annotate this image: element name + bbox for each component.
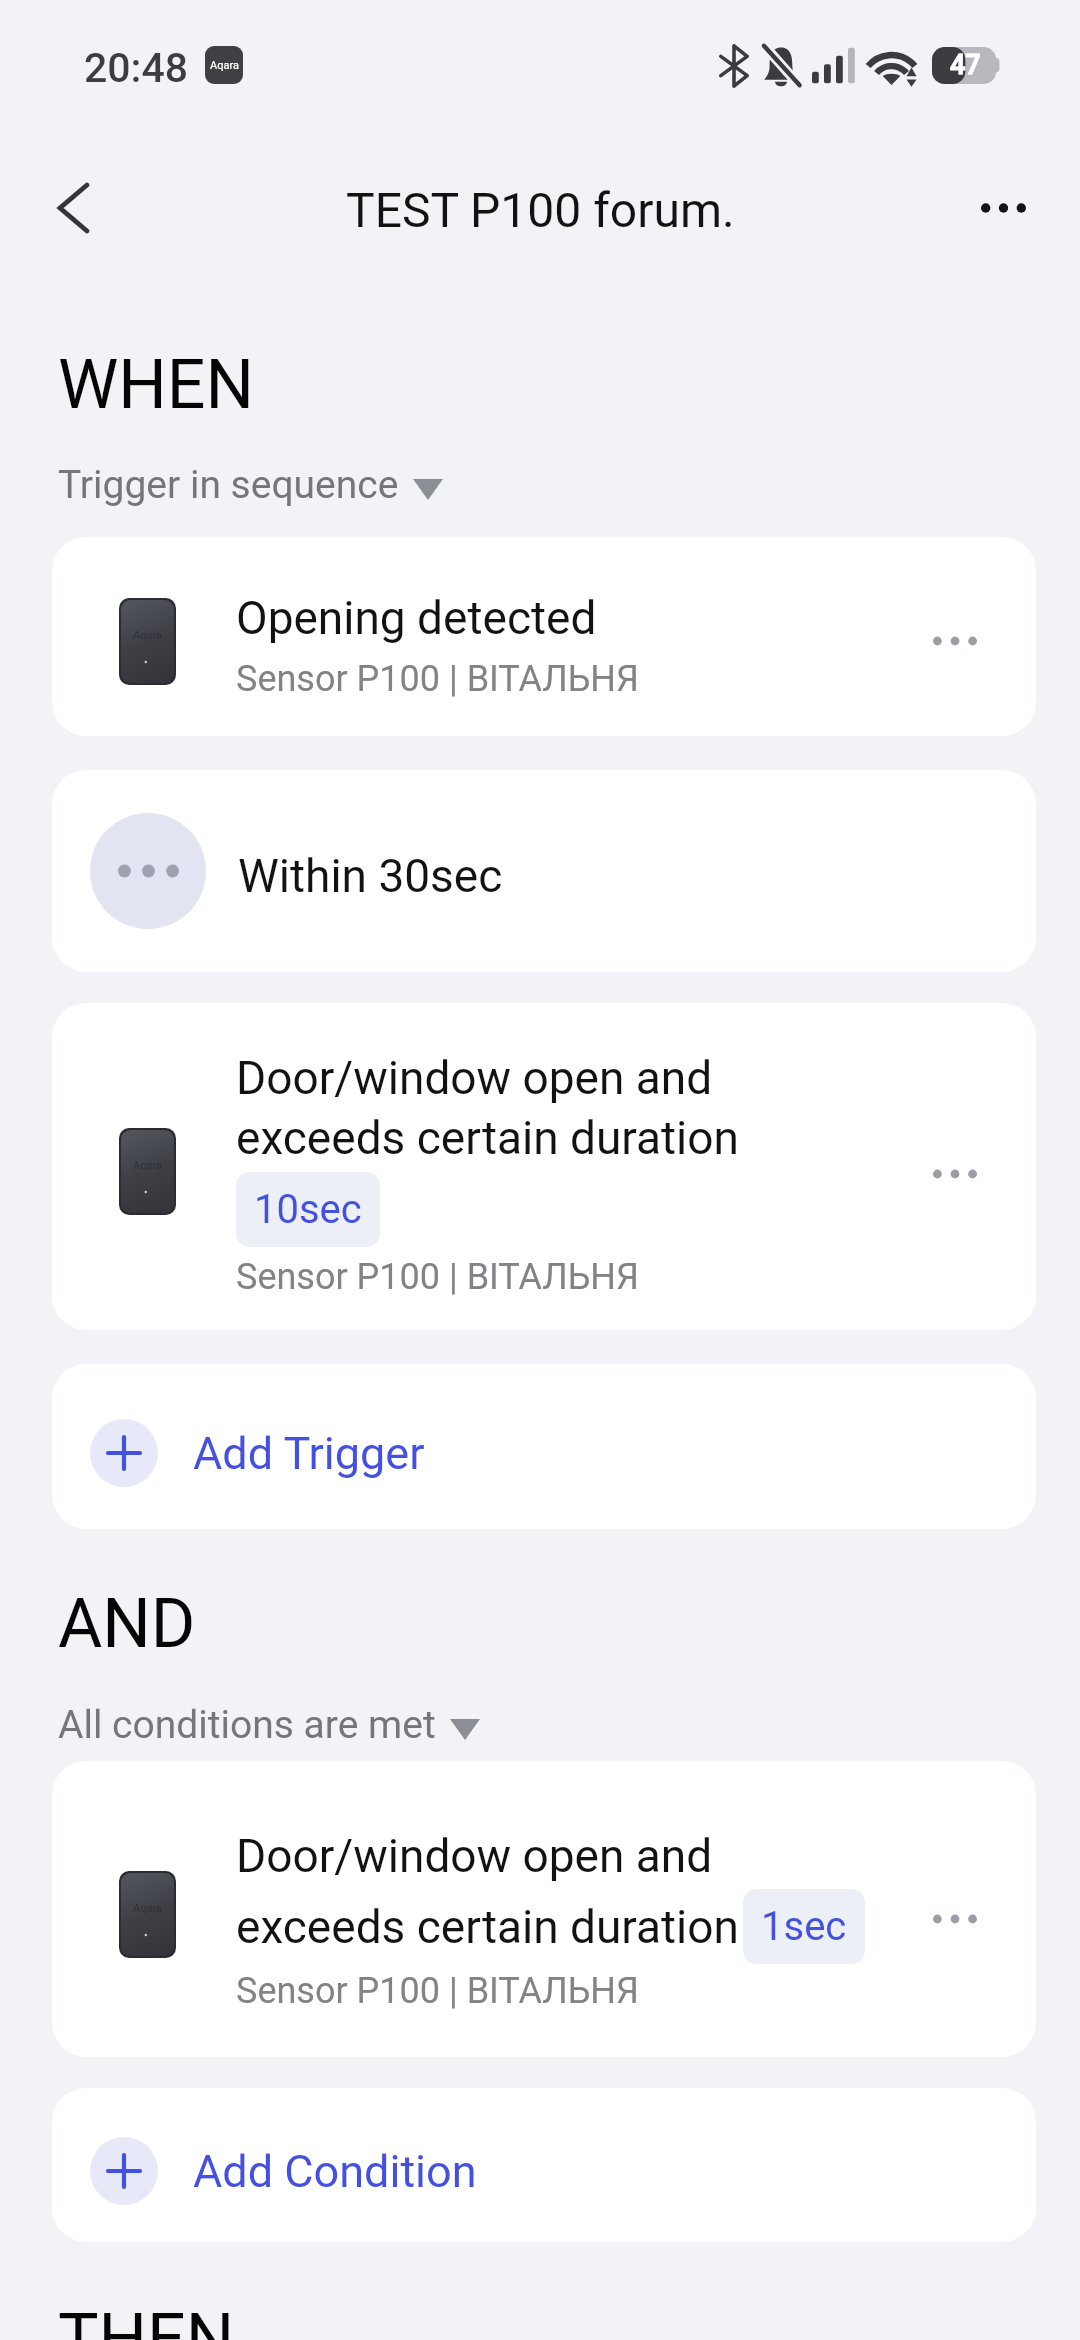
staticText: Add Condition xyxy=(193,2145,477,2198)
staticText: Aqara xyxy=(210,59,239,72)
button[interactable]: More options xyxy=(962,167,1044,249)
staticText: TEST P100 forum. xyxy=(346,182,735,238)
staticText: Sensor P100 | ВІТАЛЬНЯ xyxy=(236,1256,639,1298)
button[interactable]: More options xyxy=(910,1874,1000,1964)
button[interactable]: More options xyxy=(910,1129,1000,1219)
staticText: exceeds certain duration xyxy=(236,1111,739,1165)
staticText: Door/window open and xyxy=(236,1829,713,1883)
staticText: Aqara xyxy=(133,1159,162,1172)
staticText: Trigger in sequence xyxy=(58,462,399,508)
staticText: Add Trigger xyxy=(193,1427,425,1480)
staticText: Sensor P100 | ВІТАЛЬНЯ xyxy=(236,1970,639,2012)
staticText: Within 30sec xyxy=(238,849,503,903)
button[interactable]: Trigger in sequence xyxy=(58,462,443,508)
button[interactable]: Aqara xyxy=(52,1761,1036,2057)
button[interactable]: Add Trigger xyxy=(52,1364,1036,1529)
button[interactable]: Aqara xyxy=(52,1003,1036,1330)
button[interactable]: Back xyxy=(32,167,114,249)
staticText: 47 xyxy=(950,49,981,81)
staticText: 1sec xyxy=(761,1903,847,1950)
staticText: THEN xyxy=(58,2299,235,2340)
staticText: All conditions are met xyxy=(58,1702,436,1748)
staticText: 10sec xyxy=(254,1186,362,1233)
button[interactable]: Aqara xyxy=(52,537,1036,736)
button[interactable]: More options xyxy=(910,596,1000,686)
staticText: WHEN xyxy=(58,345,254,425)
button[interactable]: Add Condition xyxy=(52,2088,1036,2242)
staticText: exceeds certain duration xyxy=(236,1900,739,1954)
staticText: 20:48 xyxy=(84,44,189,92)
staticText: AND xyxy=(58,1584,196,1664)
staticText: Opening detected xyxy=(236,591,597,645)
button[interactable]: All conditions are met xyxy=(58,1702,480,1748)
staticText: Aqara xyxy=(133,1902,162,1915)
staticText: Aqara xyxy=(133,629,162,642)
staticText: Sensor P100 | ВІТАЛЬНЯ xyxy=(236,658,639,700)
staticText: Door/window open and xyxy=(236,1051,713,1105)
button[interactable]: Within 30sec xyxy=(52,770,1036,972)
